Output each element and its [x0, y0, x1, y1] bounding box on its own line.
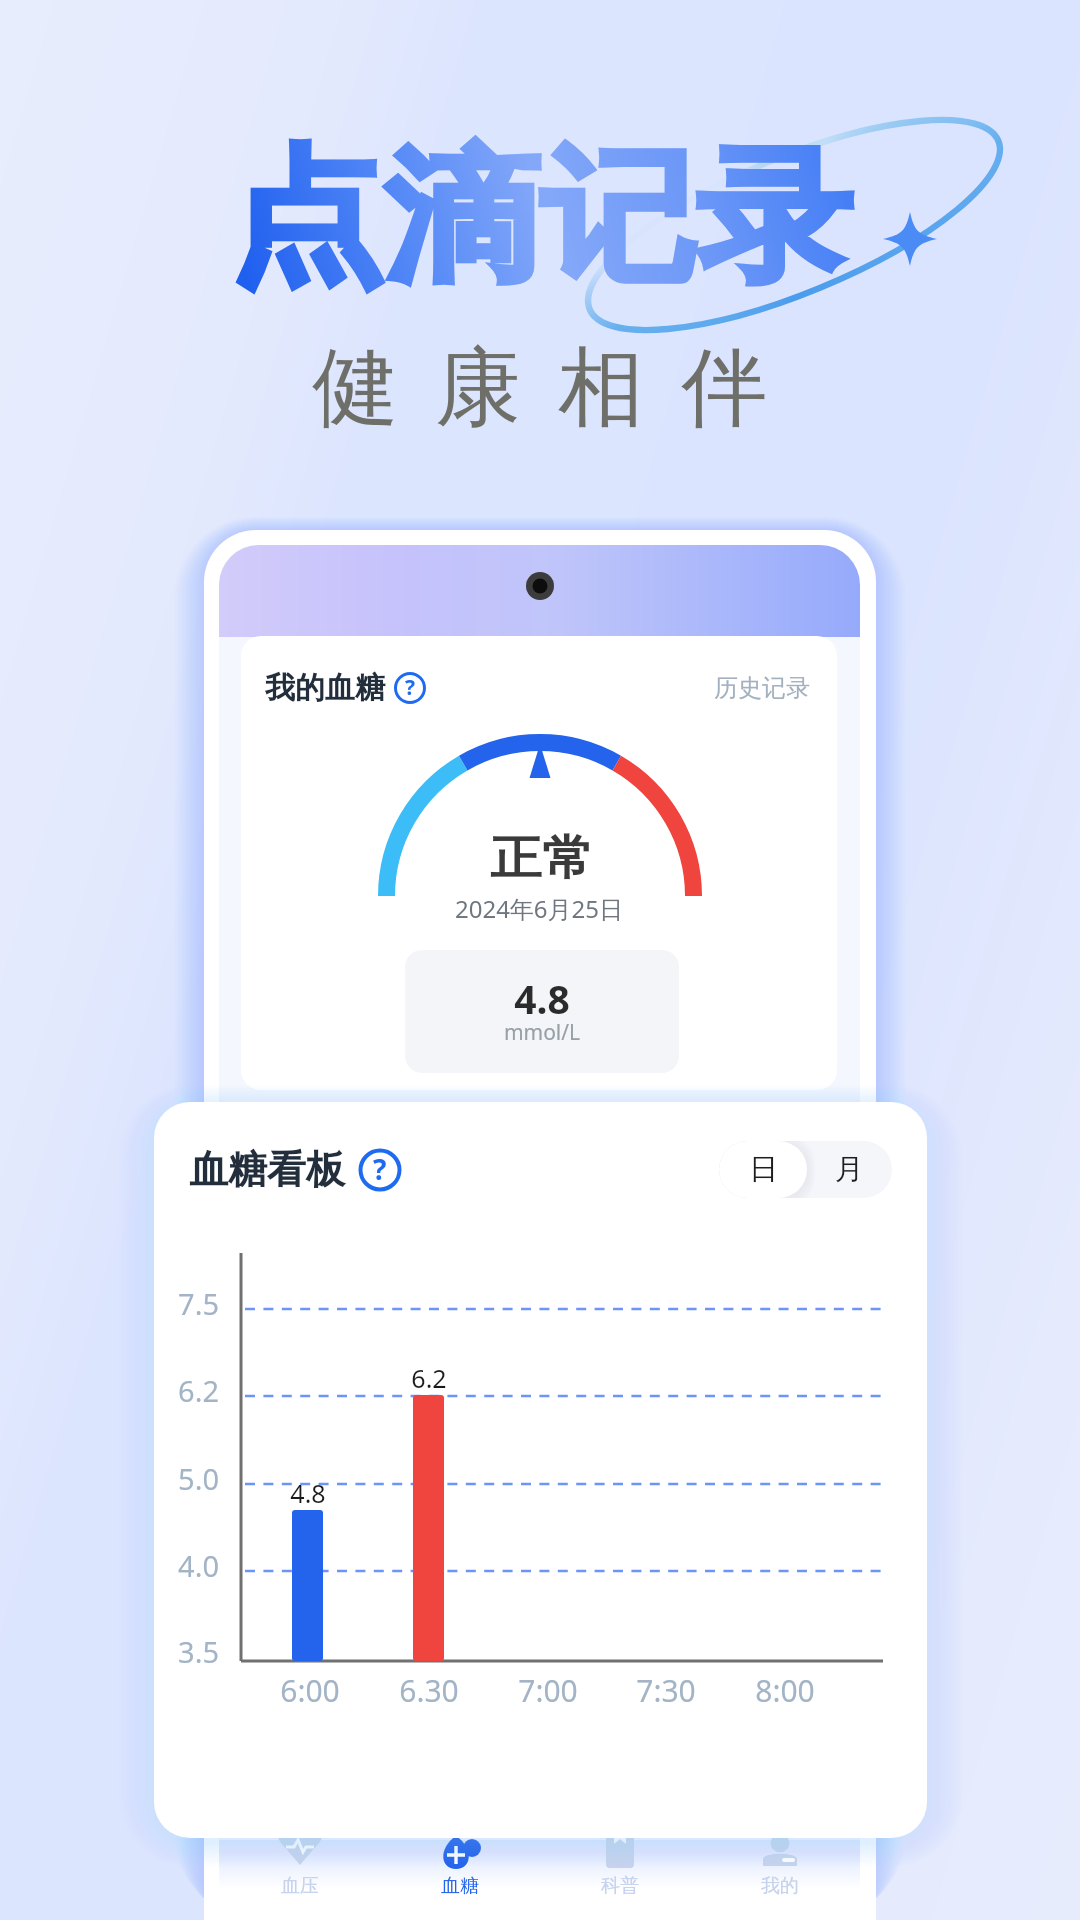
staticText: 4.0: [154, 1546, 219, 1585]
staticText: 我的血糖: [265, 669, 385, 707]
staticText: ?: [373, 1150, 387, 1188]
button[interactable]: 血糖: [380, 1826, 540, 1906]
staticText: 血糖看板: [189, 1145, 345, 1194]
staticText: 5.0: [154, 1459, 219, 1498]
button[interactable]: 月: [807, 1141, 892, 1198]
staticText: 血糖: [441, 1874, 479, 1898]
button[interactable]: 科普: [540, 1826, 700, 1906]
staticText: 7:30: [621, 1670, 711, 1711]
staticText: ?: [405, 673, 416, 702]
staticText: 我的: [761, 1874, 799, 1898]
staticText: 7.5: [154, 1284, 219, 1323]
staticText: 3.5: [154, 1632, 219, 1671]
staticText: 历史记录: [714, 673, 810, 703]
staticText: mmol/L: [405, 1018, 679, 1047]
staticText: 日: [749, 1151, 778, 1188]
button[interactable]: 血压: [219, 1826, 380, 1906]
button[interactable]: 日: [719, 1141, 807, 1198]
staticText: 2024年6月25日: [241, 892, 837, 925]
button[interactable]: 历史记录: [714, 673, 810, 703]
button[interactable]: 血糖说明: [394, 672, 426, 704]
button[interactable]: 我的: [700, 1826, 860, 1906]
button[interactable]: 血糖看板说明: [359, 1149, 401, 1191]
staticText: 6.30: [384, 1670, 474, 1711]
staticText: 健康相伴: [18, 334, 1080, 442]
staticText: 月: [835, 1151, 864, 1188]
staticText: 6.2: [154, 1371, 219, 1410]
staticText: 科普: [601, 1874, 639, 1898]
staticText: 7:00: [503, 1670, 593, 1711]
staticText: 4.8: [268, 1476, 348, 1510]
staticText: 6:00: [265, 1670, 355, 1711]
staticText: 血压: [281, 1874, 319, 1898]
staticText: 8:00: [740, 1670, 830, 1711]
staticText: 4.8: [405, 972, 679, 1025]
staticText: 6.2: [389, 1361, 469, 1395]
staticText: 点滴记录: [0, 128, 1080, 309]
staticText: 正常: [244, 829, 837, 888]
